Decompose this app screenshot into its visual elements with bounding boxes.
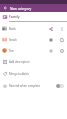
staticText: Add description xyxy=(9,60,30,64)
staticText: Book xyxy=(9,27,16,31)
button[interactable]: Add description xyxy=(0,56,67,68)
button[interactable]: Book xyxy=(0,23,67,34)
staticText: Merge bubbles xyxy=(9,72,29,76)
button[interactable]: More options xyxy=(56,45,67,56)
button[interactable]: More options xyxy=(56,23,67,34)
button[interactable]: Snack xyxy=(0,34,67,45)
button[interactable]: Merge bubbles xyxy=(0,68,67,80)
button[interactable]: Back xyxy=(0,4,10,12)
button[interactable]: More options xyxy=(56,34,67,45)
staticText: New category xyxy=(10,6,32,10)
button[interactable]: Edit xyxy=(45,34,56,45)
button[interactable]: Remind when complete xyxy=(0,80,67,92)
staticText: Snack xyxy=(9,38,17,42)
button[interactable]: Share xyxy=(45,23,56,34)
button[interactable]: Tan xyxy=(0,45,67,56)
staticText: Family xyxy=(9,14,20,19)
staticText: Tan xyxy=(9,49,14,53)
staticText: Remind when complete xyxy=(9,84,41,88)
button[interactable]: Edit xyxy=(45,45,56,56)
